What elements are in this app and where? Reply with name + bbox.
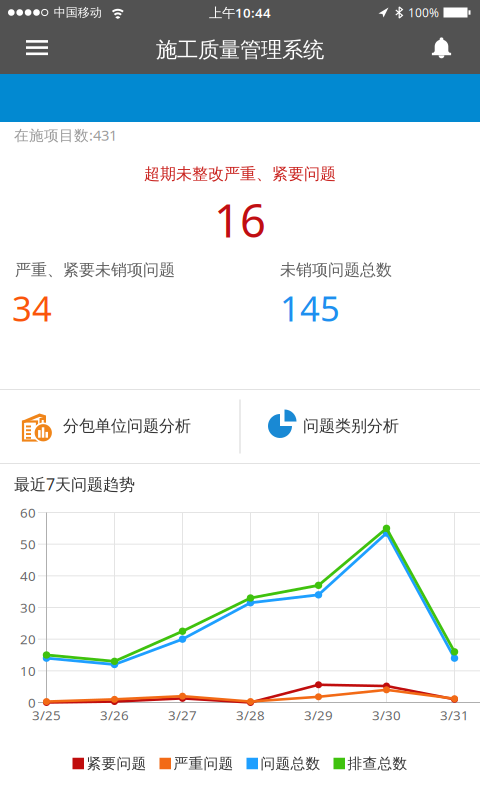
- staticText: 30: [20, 599, 36, 616]
- staticText: 中国移动: [54, 5, 102, 20]
- staticText: 在施项目数:431: [14, 125, 117, 145]
- staticText: 100%: [408, 4, 439, 20]
- button[interactable]: 分包单位问题分析: [0, 390, 240, 463]
- staticText: 34: [12, 285, 52, 331]
- staticText: 施工质量管理系统: [156, 37, 324, 63]
- staticText: 20: [20, 630, 36, 648]
- staticText: 最近7天问题趋势: [14, 473, 135, 495]
- staticText: 未销项问题总数: [280, 260, 392, 280]
- button[interactable]: Notifications: [419, 26, 463, 71]
- staticText: 紧要问题: [86, 754, 146, 772]
- staticText: 10: [20, 662, 36, 680]
- staticText: 3/31: [440, 706, 469, 724]
- button[interactable]: Menu: [16, 28, 58, 67]
- staticText: 3/28: [236, 706, 265, 724]
- staticText: 40: [20, 567, 36, 585]
- staticText: 超期未整改严重、紧要问题: [144, 164, 336, 184]
- staticText: 16: [214, 190, 266, 250]
- staticText: 严重问题: [173, 754, 233, 772]
- button[interactable]: 问题类别分析: [240, 390, 480, 463]
- staticText: 分包单位问题分析: [63, 416, 191, 436]
- staticText: 145: [280, 285, 340, 331]
- staticText: 排查总数: [347, 754, 407, 772]
- staticText: 3/25: [32, 706, 61, 724]
- staticText: 上午10:44: [209, 4, 271, 21]
- staticText: 3/30: [372, 706, 401, 724]
- staticText: 3/27: [168, 706, 197, 724]
- staticText: 3/26: [100, 706, 129, 724]
- staticText: 3/29: [304, 706, 333, 724]
- staticText: 问题总数: [260, 754, 320, 772]
- staticText: 60: [20, 504, 36, 521]
- staticText: 问题类别分析: [303, 416, 399, 436]
- staticText: 50: [20, 535, 36, 553]
- staticText: 严重、紧要未销项问题: [15, 260, 175, 280]
- staticText: 0: [28, 694, 36, 711]
